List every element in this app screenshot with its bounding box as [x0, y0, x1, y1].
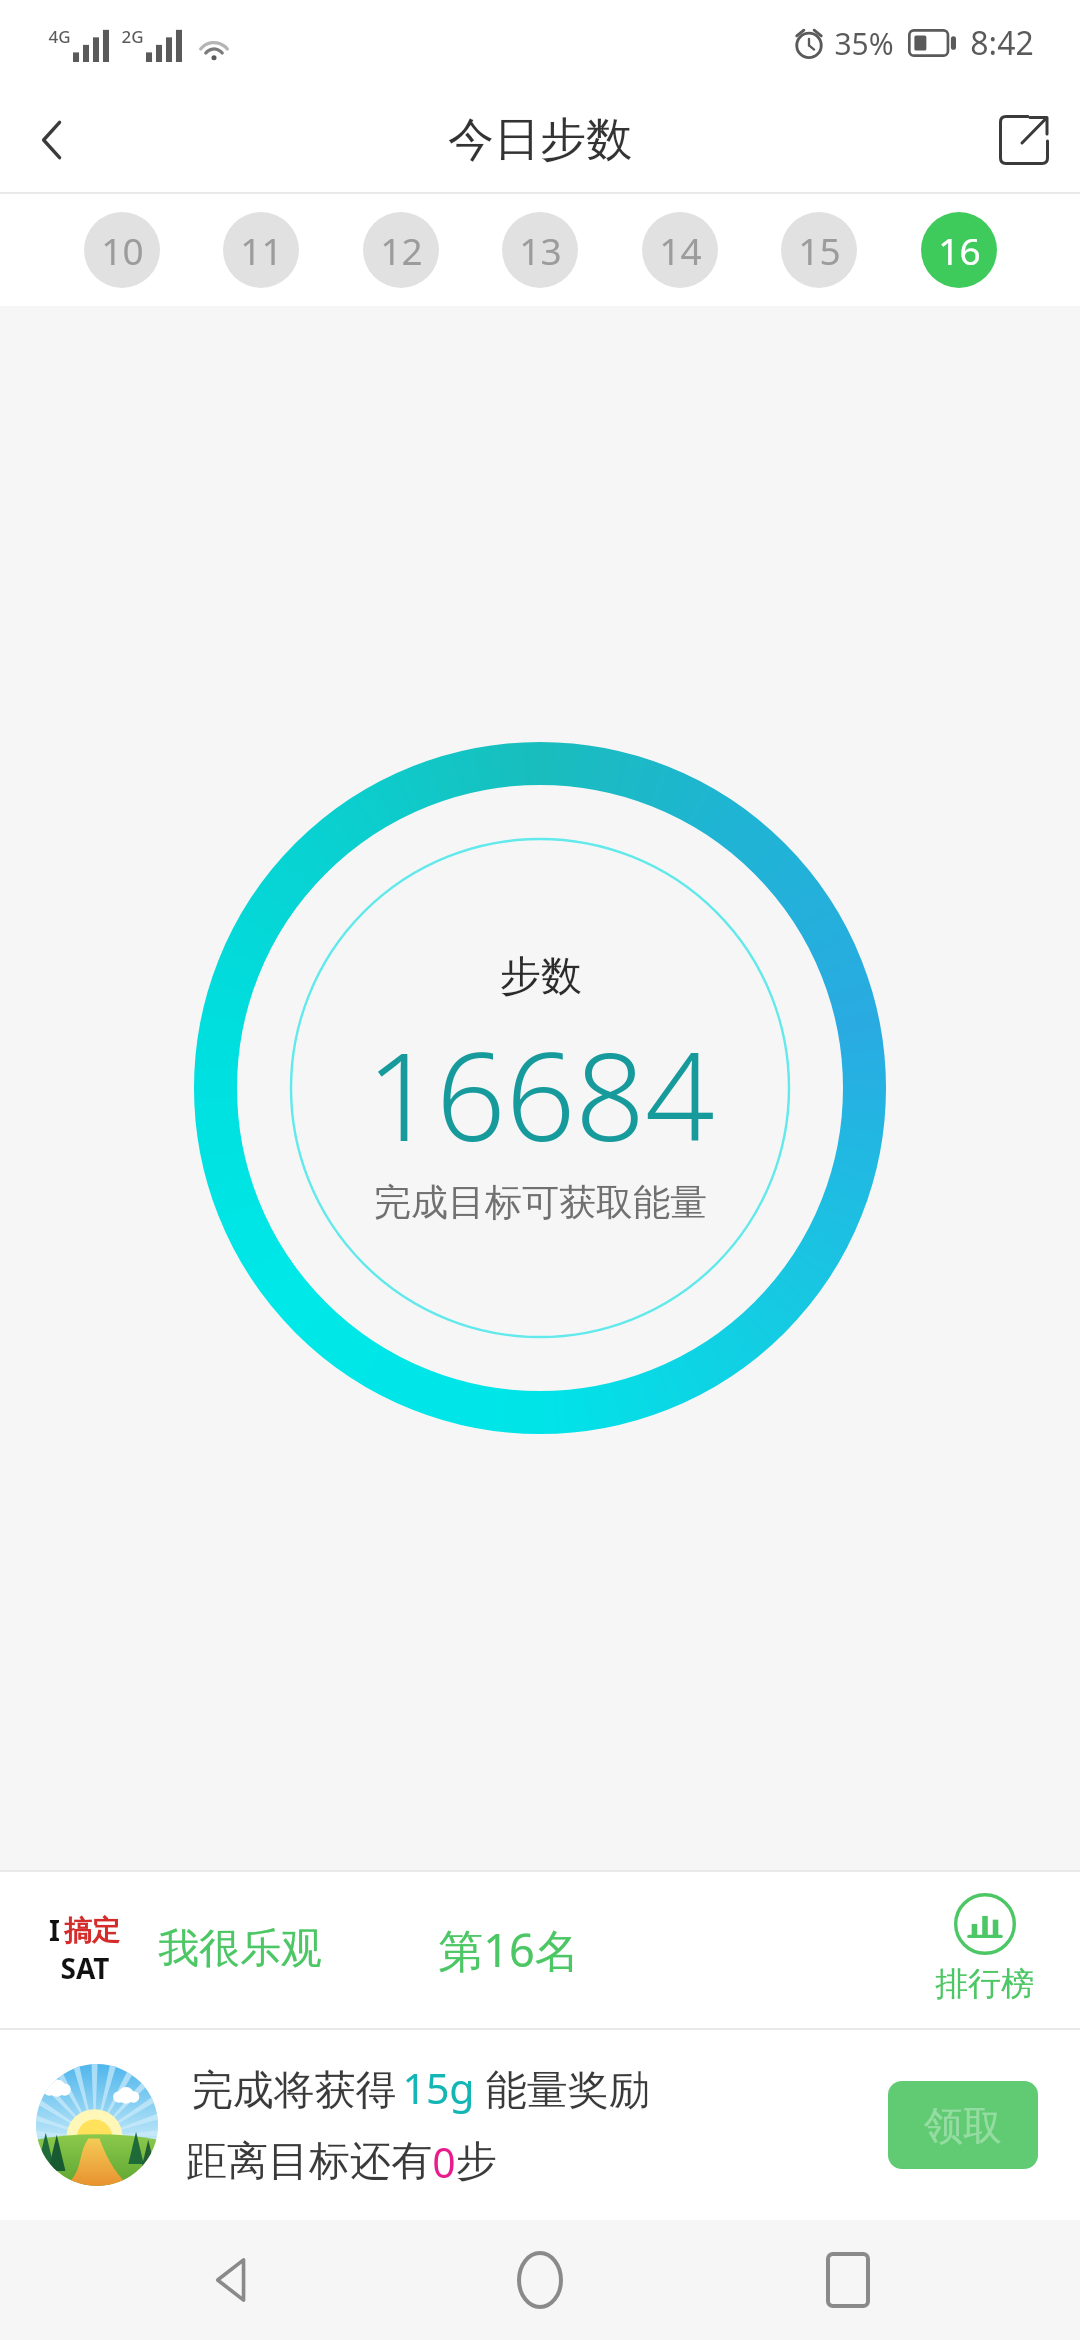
staticText: 0	[432, 2134, 456, 2190]
staticText: 4G	[48, 25, 71, 48]
staticText: SAT	[60, 1949, 110, 1987]
button[interactable]: 13	[502, 212, 578, 288]
button[interactable]: Share	[968, 86, 1080, 194]
staticText: 15	[798, 225, 841, 275]
staticText: I	[49, 1911, 60, 1949]
button[interactable]: 14	[642, 212, 718, 288]
staticText: 14	[659, 225, 702, 275]
staticText: 8:42	[970, 21, 1034, 65]
button[interactable]: Home	[465, 2220, 615, 2340]
staticText: 35%	[834, 23, 894, 64]
button[interactable]: Recents	[773, 2220, 923, 2340]
staticText: 12	[380, 225, 423, 275]
staticText: 步数	[500, 951, 582, 1003]
staticText: 完成目标可获取能量	[374, 1179, 707, 1226]
staticText: 领取	[924, 2101, 1002, 2150]
staticText: 第16名	[438, 1919, 580, 1980]
button[interactable]: 12	[363, 212, 439, 288]
button[interactable]: Back	[158, 2220, 308, 2340]
staticText: 2G	[121, 25, 144, 48]
staticText: 距离目标还有	[186, 2136, 432, 2188]
button[interactable]: 11	[223, 212, 299, 288]
staticText: 我很乐观	[158, 1923, 322, 1975]
staticText: 13	[519, 225, 562, 275]
button[interactable]: I	[34, 1899, 134, 1999]
staticText: 搞定	[64, 1913, 120, 1948]
button[interactable]: 10	[84, 212, 160, 288]
staticText: 10	[101, 225, 144, 275]
staticText: 16	[938, 225, 981, 275]
staticText: 步	[456, 2136, 497, 2188]
button[interactable]: 排行榜	[923, 1887, 1046, 2011]
staticText: 能量奖励	[475, 2060, 650, 2116]
staticText: 今日步数	[448, 111, 632, 169]
button[interactable]: 完成将获得	[0, 2030, 1080, 2220]
staticText: 排行榜	[935, 1963, 1034, 2005]
staticText: 11	[240, 225, 283, 275]
staticText: 16684	[366, 1011, 715, 1177]
button[interactable]: 领取	[888, 2081, 1038, 2169]
button[interactable]: 15	[781, 212, 857, 288]
button[interactable]: Back	[0, 88, 104, 192]
button[interactable]: 16	[921, 212, 997, 288]
staticText: 完成将获得	[186, 2060, 402, 2116]
staticText: 15g	[402, 2060, 475, 2116]
